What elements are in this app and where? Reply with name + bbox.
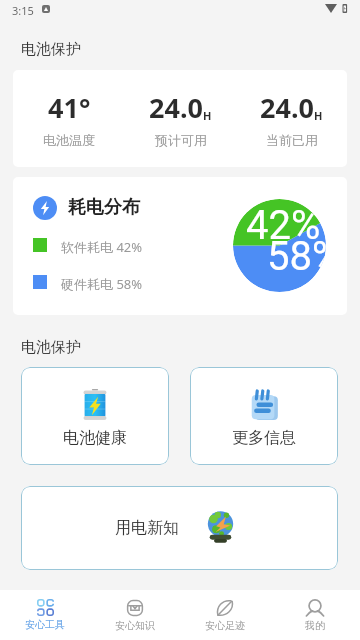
button[interactable]: 足迹 [180,590,270,640]
staticText: 电池健康 [63,428,127,448]
button[interactable]: 电池健康 [21,367,169,465]
staticText: 电池温度 [43,132,95,148]
button[interactable]: 知识 [90,590,180,640]
staticText: 41 [48,89,79,126]
button[interactable]: 我的 [270,590,360,640]
staticText: 耗电分布 [68,196,140,219]
button[interactable]: 更多信息 [190,367,338,465]
staticText: 当前已用 [266,132,318,148]
button[interactable]: 安心工具 [0,590,90,640]
other: 安心工具 [37,599,54,616]
staticText: 用电新知 [115,518,179,538]
staticText: 42% [246,202,321,249]
other: 我的 [306,599,324,617]
staticText: H [203,108,212,123]
staticText: 电池保护 [21,338,81,357]
staticText: 安心知识 [115,619,155,632]
staticText: 软件耗电 42% [61,238,143,256]
staticText: 24.0 [260,89,314,126]
other: 足迹 [216,599,234,617]
staticText: 3:15 [12,3,34,18]
staticText: 24.0 [149,89,203,126]
staticText: 电池保护 [21,40,81,59]
staticText: 更多信息 [232,428,296,448]
staticText: 安心工具 [25,618,65,631]
staticText: 58% [267,233,326,280]
staticText: ° [79,89,91,126]
staticText: H [314,108,323,123]
staticText: 我的 [305,619,325,632]
other: 知识 [126,599,144,617]
button[interactable]: 用电新知 [21,486,338,570]
staticText: 安心足迹 [205,619,245,632]
staticText: 硬件耗电 58% [61,275,143,293]
staticText: 预计可用 [155,132,207,148]
